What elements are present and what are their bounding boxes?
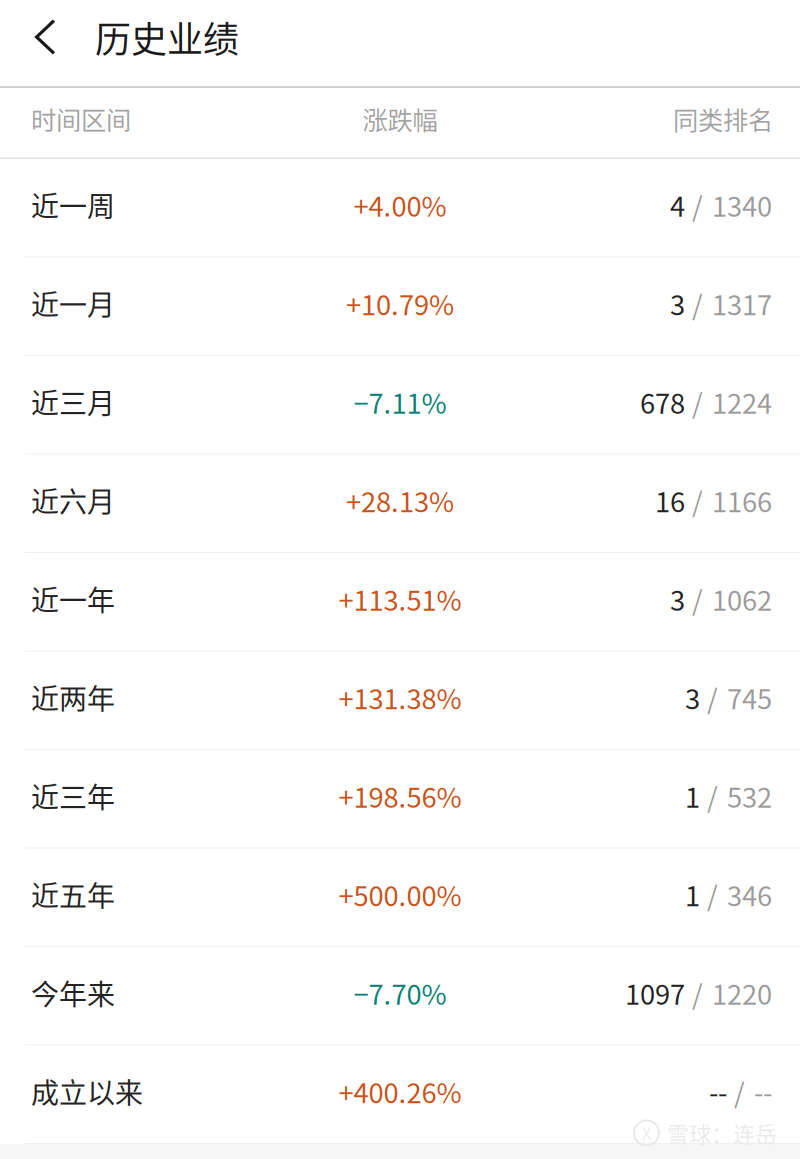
staticText: / xyxy=(692,973,703,1013)
staticText: 今年来 xyxy=(31,972,115,1013)
button[interactable]: 近三月 xyxy=(0,356,800,454)
button[interactable]: 近一周 xyxy=(0,159,800,257)
button[interactable]: 成立以来 xyxy=(0,1045,800,1144)
staticText: 532 xyxy=(727,776,772,816)
staticText: +113.51% xyxy=(338,579,461,619)
staticText: 近五年 xyxy=(31,874,115,914)
staticText: 1224 xyxy=(712,382,772,422)
staticText: −7.11% xyxy=(353,382,446,422)
staticText: / xyxy=(707,776,718,816)
staticText: / xyxy=(692,283,703,323)
button[interactable]: 近两年 xyxy=(0,651,800,750)
staticText: 近一周 xyxy=(31,184,115,225)
staticText: +400.26% xyxy=(338,1071,461,1111)
staticText: X xyxy=(642,1121,651,1145)
staticText: -- xyxy=(709,1071,727,1111)
staticText: 近六月 xyxy=(31,480,115,520)
staticText: 1 xyxy=(685,874,700,914)
staticText: 1317 xyxy=(712,283,772,323)
staticText: / xyxy=(707,874,718,914)
staticText: / xyxy=(692,382,703,422)
staticText: 近三年 xyxy=(31,775,115,816)
staticText: +4.00% xyxy=(353,185,446,225)
staticText: 1340 xyxy=(712,185,772,225)
staticText: / xyxy=(734,1071,745,1111)
staticText: 1 xyxy=(685,776,700,816)
staticText: 3 xyxy=(670,579,685,619)
staticText: 1166 xyxy=(712,480,772,520)
staticText: / xyxy=(692,185,703,225)
staticText: +10.79% xyxy=(346,283,454,323)
button[interactable]: Back xyxy=(0,0,95,74)
staticText: 1062 xyxy=(712,579,772,619)
staticText: 近两年 xyxy=(31,677,115,717)
staticText: / xyxy=(707,677,718,717)
staticText: 雪球：连岳 xyxy=(667,1117,777,1149)
staticText: / xyxy=(692,579,703,619)
button[interactable]: 近五年 xyxy=(0,848,800,947)
staticText: +131.38% xyxy=(338,677,461,717)
staticText: 成立以来 xyxy=(31,1071,143,1111)
button[interactable]: 近一年 xyxy=(0,553,800,651)
staticText: 3 xyxy=(685,677,700,717)
button[interactable]: 近三年 xyxy=(0,750,800,848)
staticText: 同类排名 xyxy=(673,100,773,137)
staticText: 1097 xyxy=(625,973,685,1013)
staticText: -- xyxy=(754,1071,772,1111)
button[interactable]: 近一月 xyxy=(0,257,800,356)
button[interactable]: 今年来 xyxy=(0,947,800,1045)
staticText: 近三月 xyxy=(31,381,115,422)
staticText: 近一月 xyxy=(31,283,115,323)
staticText: 时间区间 xyxy=(31,100,131,137)
staticText: 3 xyxy=(670,283,685,323)
staticText: +500.00% xyxy=(338,874,461,914)
button[interactable]: 近六月 xyxy=(0,454,800,553)
staticText: 1220 xyxy=(712,973,772,1013)
staticText: / xyxy=(692,480,703,520)
staticText: 745 xyxy=(727,677,772,717)
staticText: 678 xyxy=(640,382,685,422)
staticText: 历史业绩 xyxy=(95,11,239,63)
staticText: −7.70% xyxy=(353,973,446,1013)
staticText: +28.13% xyxy=(346,480,454,520)
staticText: 4 xyxy=(670,185,685,225)
staticText: 16 xyxy=(655,480,685,520)
staticText: 346 xyxy=(727,874,772,914)
staticText: 近一年 xyxy=(31,578,115,619)
staticText: 涨跌幅 xyxy=(362,100,437,137)
staticText: +198.56% xyxy=(338,776,461,816)
